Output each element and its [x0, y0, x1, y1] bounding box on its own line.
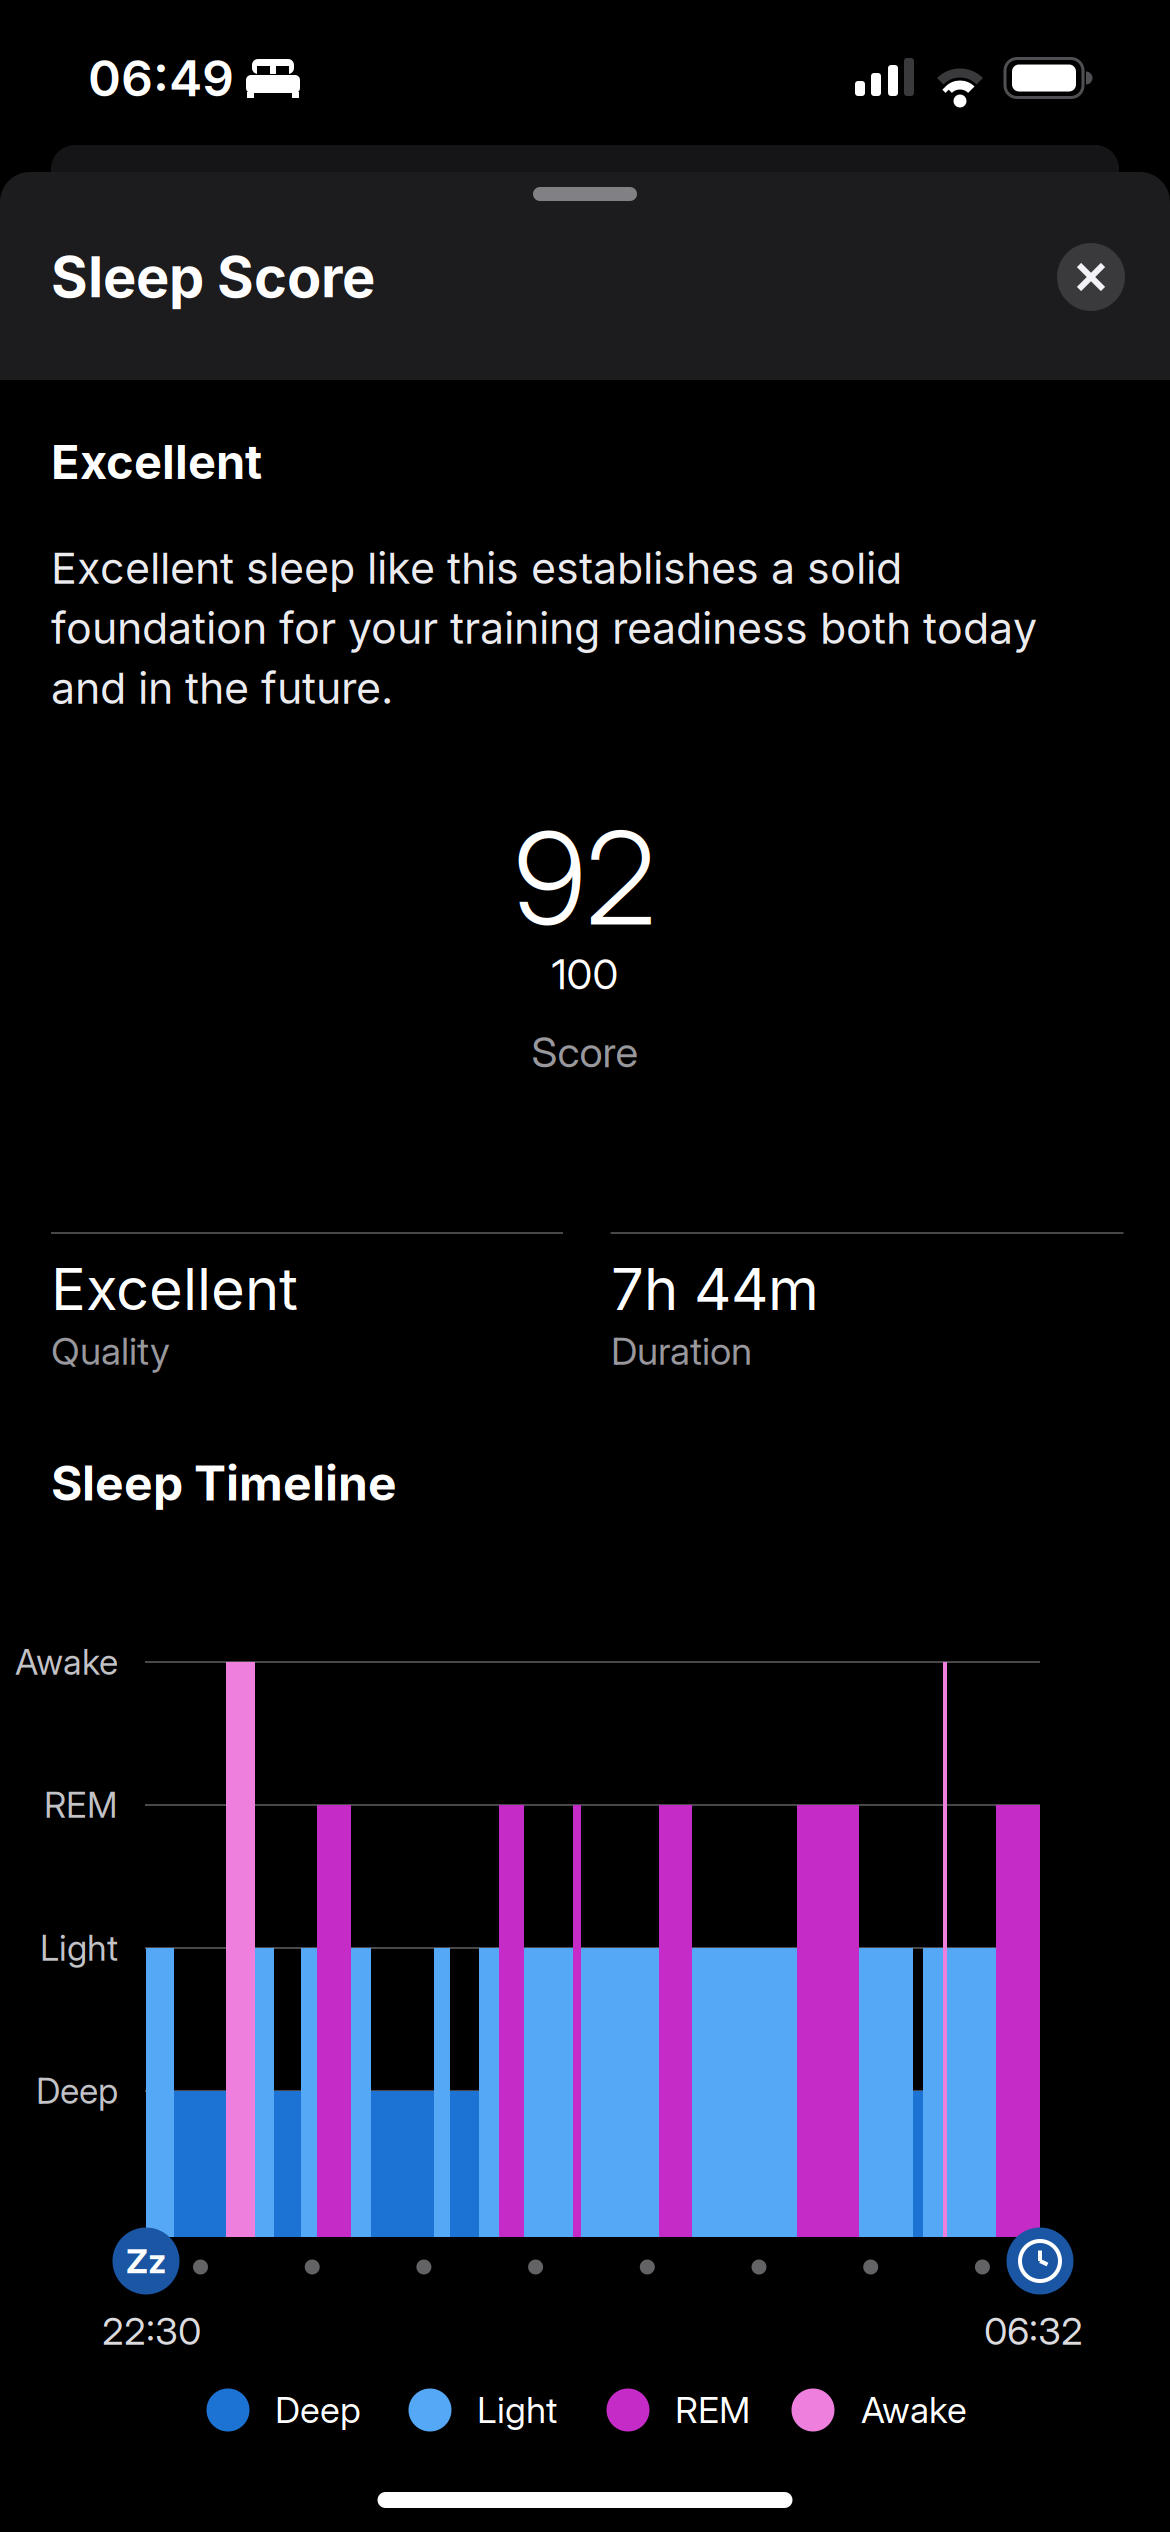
staticText: REM	[44, 1784, 118, 1826]
staticText: Quality	[51, 1328, 170, 1374]
staticText: Awake	[15, 1641, 118, 1683]
staticText: Deep	[36, 2070, 118, 2112]
staticText: 7h 44m	[611, 1254, 819, 1324]
staticText: 06:49	[88, 48, 234, 108]
staticText: Light	[477, 2388, 557, 2432]
staticText: Light	[40, 1927, 118, 1969]
staticText: Awake	[861, 2388, 967, 2432]
staticText: REM	[675, 2388, 750, 2432]
staticText: 06:32	[984, 2308, 1083, 2354]
staticText: 100	[551, 949, 618, 999]
staticText: 22:30	[102, 2308, 201, 2354]
staticText: Excellent	[51, 1254, 298, 1324]
staticText: 92	[513, 801, 656, 955]
staticText: foundation for your training readiness b…	[51, 602, 1037, 654]
staticText: Zz	[126, 2240, 166, 2281]
staticText: Excellent sleep like this establishes a …	[51, 542, 902, 594]
staticText: Duration	[611, 1328, 752, 1374]
staticText: and in the future.	[51, 662, 393, 714]
staticText: Sleep Score	[51, 243, 375, 311]
staticText: Deep	[275, 2388, 361, 2432]
button[interactable]	[1057, 243, 1125, 311]
staticText: Sleep Timeline	[51, 1454, 397, 1512]
staticText: Excellent	[51, 434, 262, 490]
staticText: Score	[531, 1027, 638, 1077]
